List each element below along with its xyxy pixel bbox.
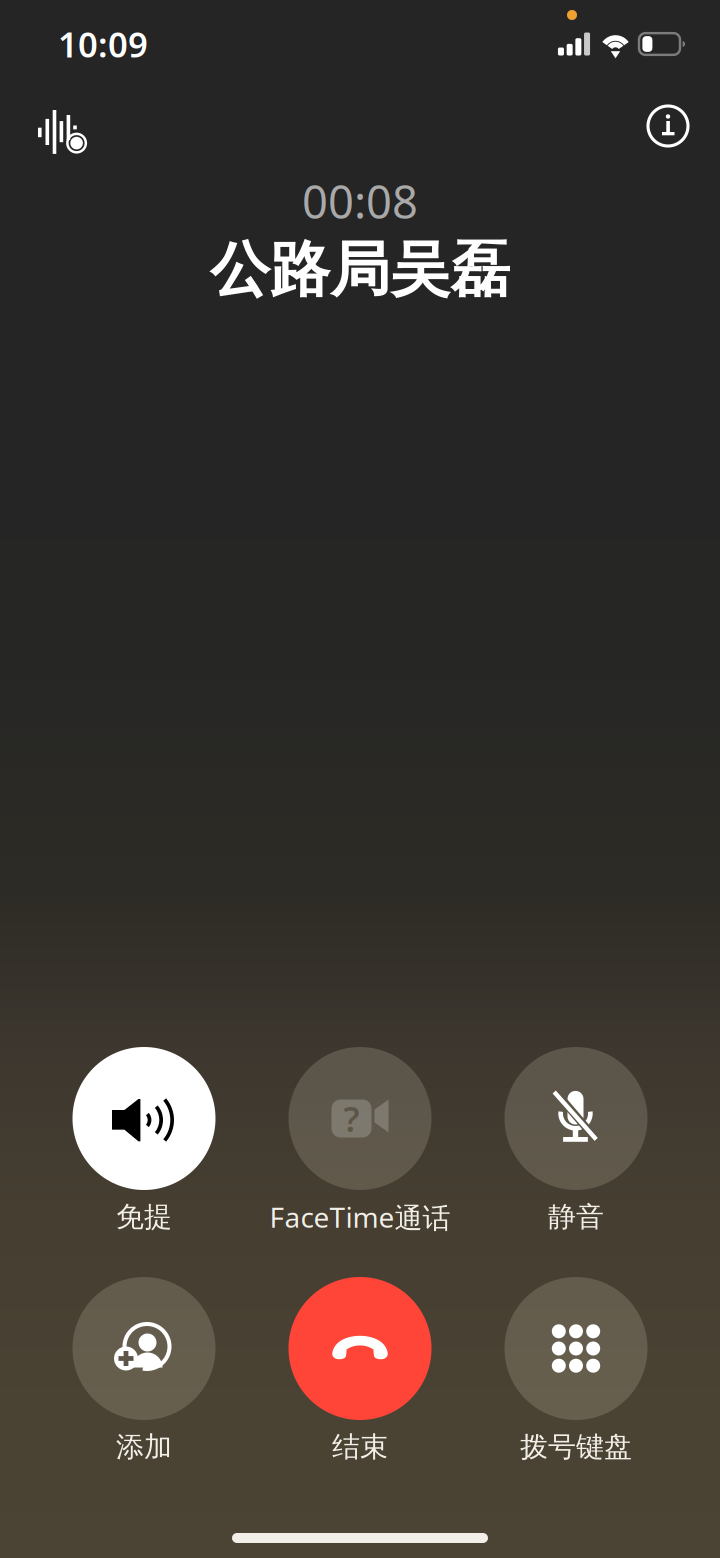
button[interactable]: Speaker xyxy=(36,1047,252,1232)
staticText: 拨号键盘 xyxy=(520,1430,632,1464)
button[interactable]: End call xyxy=(252,1277,468,1462)
staticText: 静音 xyxy=(548,1200,604,1234)
button[interactable]: Call info xyxy=(638,102,698,162)
staticText: 00:08 xyxy=(302,171,418,231)
staticText: 结束 xyxy=(332,1430,388,1464)
button[interactable]: Record call xyxy=(30,102,96,162)
staticText: ? xyxy=(343,1095,359,1141)
button[interactable]: Add call xyxy=(36,1277,252,1462)
button[interactable]: Mute xyxy=(468,1047,684,1232)
staticText: 免提 xyxy=(116,1200,172,1234)
staticText: 10:09 xyxy=(58,21,148,67)
staticText: FaceTime通话 xyxy=(269,1198,450,1236)
button[interactable]: FaceTime xyxy=(252,1047,468,1232)
staticText: 公路局吴磊 xyxy=(210,233,510,307)
button[interactable]: Keypad xyxy=(468,1277,684,1462)
staticText: 添加 xyxy=(116,1430,172,1464)
